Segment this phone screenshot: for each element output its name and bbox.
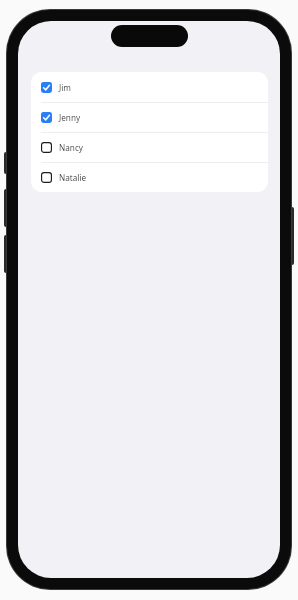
button[interactable]: Unchecked: [31, 162, 268, 192]
other: Checked: [41, 112, 52, 123]
button[interactable]: Checked: [31, 102, 268, 132]
other: Unchecked: [41, 142, 52, 153]
other: Checked: [41, 82, 52, 93]
staticText: Jenny: [59, 112, 81, 123]
other: Unchecked: [41, 172, 52, 183]
button[interactable]: Checked: [31, 72, 268, 102]
button[interactable]: Unchecked: [31, 132, 268, 162]
staticText: Natalie: [59, 172, 87, 183]
staticText: Nancy: [59, 142, 83, 153]
staticText: Jim: [59, 82, 72, 93]
